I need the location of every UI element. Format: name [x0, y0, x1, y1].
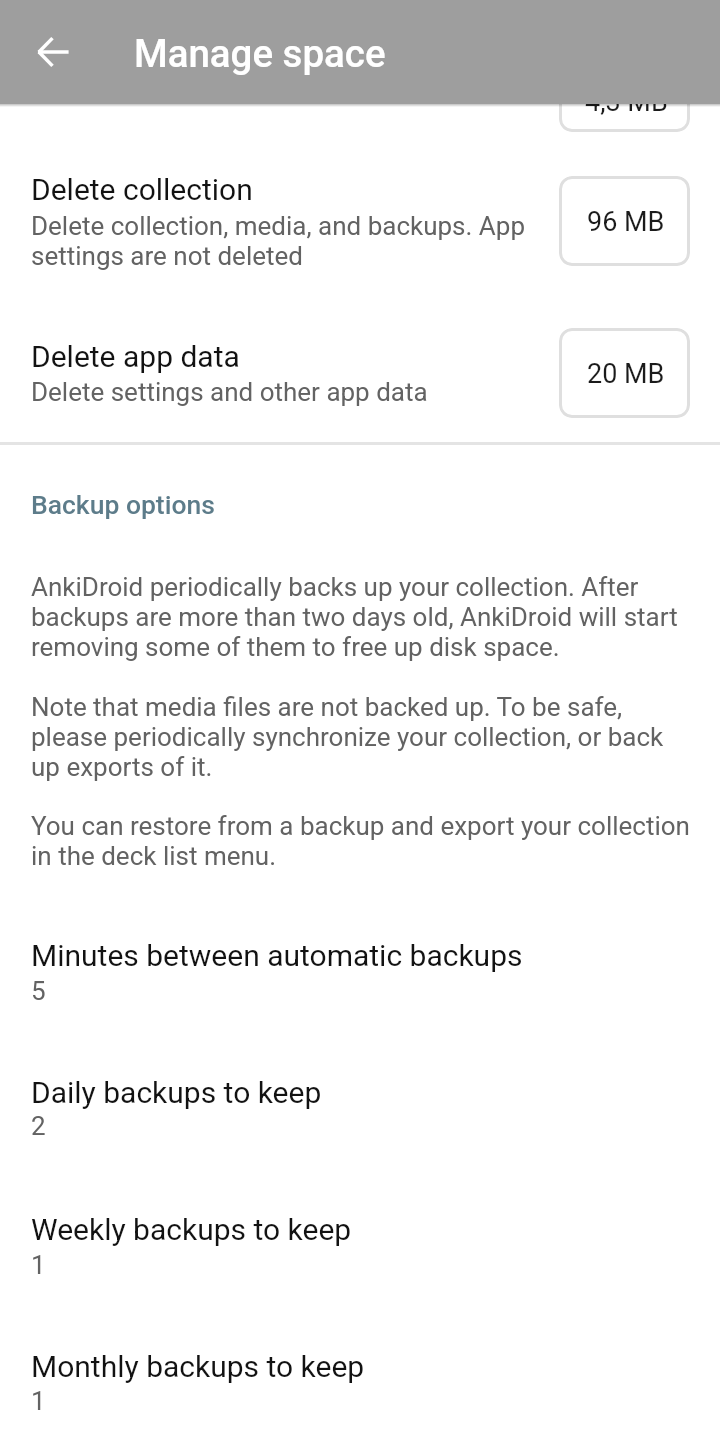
staticText: Daily backups to keep [31, 1076, 322, 1110]
staticText: 96 MB [587, 206, 665, 238]
staticText: 20 MB [587, 358, 665, 390]
button[interactable]: Weekly backups to keep [0, 1179, 720, 1314]
button[interactable]: Daily backups to keep [0, 1042, 720, 1175]
staticText: You can restore from a backup and export… [31, 811, 691, 871]
staticText: AnkiDroid periodically backs up your col… [31, 572, 691, 662]
staticText: Delete collection [31, 173, 253, 207]
button[interactable]: 4,3 MB [0, 0, 720, 132]
button[interactable]: Navigate up [5, 4, 100, 99]
staticText: Delete collection, media, and backups. A… [31, 211, 543, 271]
staticText: Note that media files are not backed up.… [31, 692, 691, 782]
staticText: 2 [31, 1111, 46, 1141]
button[interactable]: Delete app data [0, 323, 720, 424]
staticText: 1 [31, 1386, 46, 1416]
staticText: 5 [31, 976, 46, 1006]
staticText: Monthly backups to keep [31, 1350, 365, 1384]
staticText: 4,3 MB [585, 86, 668, 118]
staticText: Minutes between automatic backups [31, 939, 523, 973]
button[interactable]: Minutes between automatic backups [0, 905, 720, 1040]
staticText: Weekly backups to keep [31, 1213, 352, 1247]
button[interactable]: Monthly backups to keep [0, 1316, 720, 1450]
staticText: Delete settings and other app data [31, 377, 428, 407]
button[interactable]: 96 MB [559, 176, 690, 266]
staticText: Manage space [134, 31, 386, 76]
button[interactable]: 20 MB [559, 328, 690, 418]
staticText: Delete app data [31, 340, 240, 374]
staticText: 1 [31, 1250, 46, 1280]
staticText: Backup options [31, 490, 215, 520]
button[interactable]: Delete collection [0, 156, 720, 288]
